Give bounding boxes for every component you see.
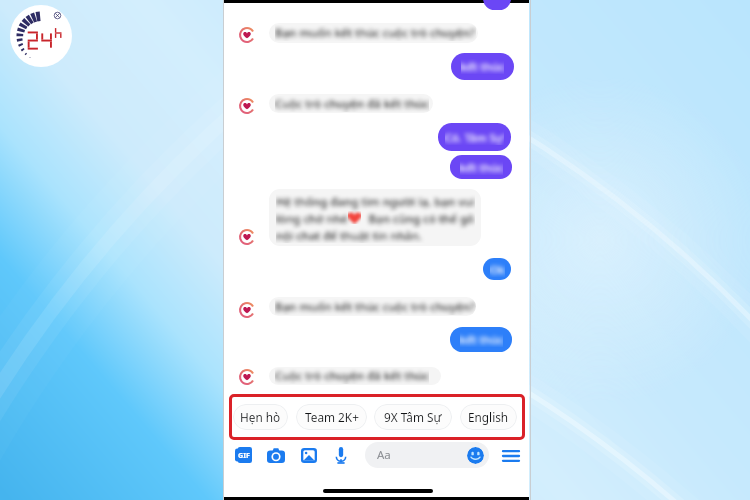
staticText: Bạn muốn kết thúc cuộc trò chuyện? bbox=[275, 25, 476, 41]
button[interactable]: English bbox=[460, 404, 517, 430]
button[interactable]: Có. Tâm Sự bbox=[438, 123, 511, 151]
staticText: kết thúc bbox=[460, 332, 503, 347]
staticText: Ok bbox=[490, 262, 505, 277]
staticText: GIF bbox=[238, 450, 250, 460]
staticText: Bạn muốn kết thúc cuộc trò chuyện? bbox=[275, 299, 476, 315]
button[interactable]: Ok bbox=[483, 258, 511, 280]
button[interactable]: Bạn muốn kết thúc cuộc trò chuyện? bbox=[269, 23, 478, 43]
button[interactable]: Camera bbox=[267, 448, 285, 463]
button[interactable]: kết thúc bbox=[451, 53, 514, 80]
button[interactable]: Voice message bbox=[335, 447, 347, 464]
staticText: 9X Tâm Sự bbox=[384, 409, 442, 425]
other: Avatar bbox=[239, 229, 255, 245]
button[interactable]: Aa bbox=[365, 442, 489, 468]
button[interactable]: Bạn muốn kết thúc cuộc trò chuyện? bbox=[269, 297, 476, 316]
button[interactable]: GIF bbox=[235, 447, 252, 463]
button[interactable]: Hệ thống đang tìm người lạ, bạn vui lòng… bbox=[269, 189, 481, 246]
other: Avatar bbox=[239, 369, 255, 385]
staticText: Hệ thống đang tìm người lạ, bạn vui lòng… bbox=[276, 194, 475, 243]
staticText: Cuộc trò chuyện đã kết thúc bbox=[275, 96, 429, 112]
staticText: Aa bbox=[377, 447, 391, 463]
button[interactable]: kết thúc bbox=[450, 155, 512, 179]
button[interactable]: Hẹn hò bbox=[233, 404, 288, 430]
staticText: kết thúc bbox=[460, 160, 503, 175]
staticText: kết thúc bbox=[461, 59, 504, 74]
button[interactable]: Cuộc trò chuyện đã kết thúc bbox=[269, 367, 441, 385]
button[interactable]: Emoji bbox=[467, 447, 484, 464]
staticText: Có. Tâm Sự bbox=[445, 130, 504, 145]
other: Avatar bbox=[239, 98, 255, 114]
other: Avatar bbox=[239, 302, 255, 318]
staticText: English bbox=[468, 409, 509, 425]
button[interactable]: Photos bbox=[301, 448, 317, 463]
other: Avatar bbox=[239, 27, 255, 43]
staticText: Hẹn hò bbox=[240, 409, 281, 425]
staticText: Team 2K+ bbox=[305, 409, 359, 425]
button[interactable]: More options bbox=[503, 450, 519, 462]
staticText: Cuộc trò chuyện đã kết thúc bbox=[275, 368, 429, 384]
button[interactable]: 9X Tâm Sự bbox=[374, 404, 452, 430]
button[interactable]: Cuộc trò chuyện đã kết thúc bbox=[269, 94, 433, 113]
button[interactable]: kết thúc bbox=[450, 327, 512, 352]
button[interactable]: Team 2K+ bbox=[296, 404, 367, 430]
